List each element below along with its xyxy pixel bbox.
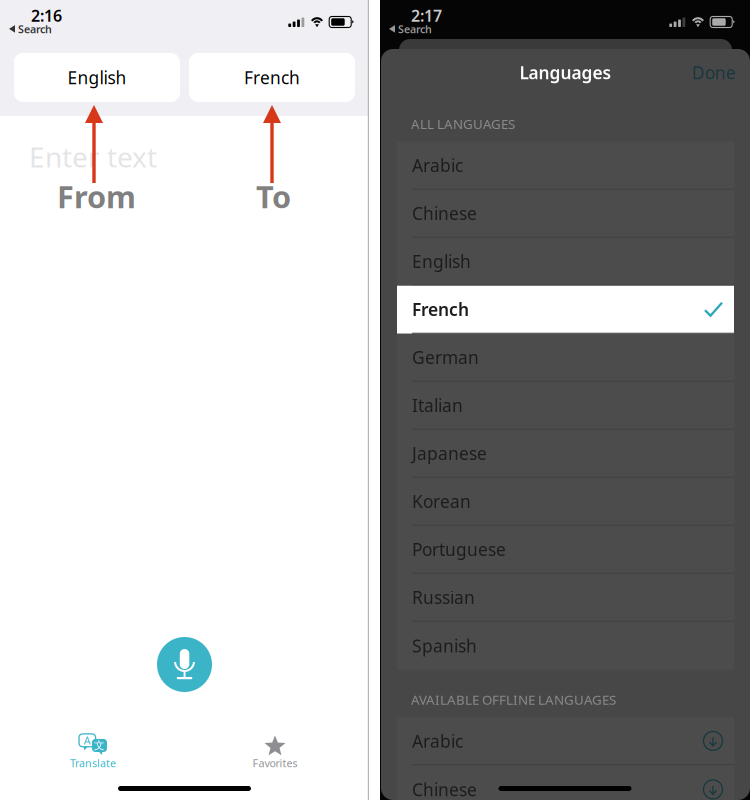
button[interactable]: Search bbox=[9, 22, 52, 36]
button[interactable]: Chinese bbox=[397, 765, 734, 800]
staticText: French bbox=[244, 66, 300, 89]
staticText: Chinese bbox=[412, 778, 477, 800]
button[interactable]: Japanese bbox=[397, 430, 734, 478]
button[interactable]: A bbox=[49, 734, 137, 770]
staticText: Enter text bbox=[29, 138, 157, 175]
button[interactable]: Search bbox=[389, 22, 432, 36]
staticText: Arabic bbox=[412, 729, 463, 752]
staticText: Spanish bbox=[412, 634, 477, 657]
button[interactable]: French bbox=[397, 286, 734, 334]
staticText: Japanese bbox=[412, 442, 487, 465]
staticText: Search bbox=[398, 22, 432, 36]
staticText: Favorites bbox=[252, 756, 297, 770]
staticText: Done bbox=[692, 61, 736, 84]
staticText: Italian bbox=[412, 394, 463, 417]
button[interactable]: Arabic bbox=[397, 717, 734, 765]
button[interactable]: Portuguese bbox=[397, 526, 734, 574]
staticText: AVAILABLE OFFLINE LANGUAGES bbox=[411, 691, 616, 708]
staticText: ALL LANGUAGES bbox=[411, 115, 515, 133]
button[interactable]: Chinese bbox=[397, 190, 734, 238]
staticText: Translate bbox=[70, 756, 116, 770]
staticText: 文 bbox=[94, 739, 105, 752]
staticText: Portuguese bbox=[412, 538, 506, 561]
staticText: Russian bbox=[412, 586, 475, 609]
staticText: Chinese bbox=[412, 202, 477, 225]
staticText: Search bbox=[18, 22, 52, 36]
staticText: To bbox=[256, 176, 291, 217]
button[interactable]: English bbox=[397, 238, 734, 286]
staticText: 2:17 bbox=[411, 5, 442, 26]
button[interactable]: German bbox=[397, 334, 734, 382]
staticText: A bbox=[84, 733, 91, 747]
button[interactable]: French bbox=[189, 53, 355, 102]
button[interactable]: Done bbox=[692, 53, 750, 92]
staticText: 2:16 bbox=[31, 5, 62, 26]
button[interactable]: Russian bbox=[397, 574, 734, 622]
button[interactable]: Arabic bbox=[397, 142, 734, 190]
button[interactable]: Italian bbox=[397, 382, 734, 430]
button[interactable]: Favorites bbox=[231, 734, 319, 770]
staticText: Korean bbox=[412, 490, 471, 513]
staticText: English bbox=[67, 66, 126, 89]
staticText: Arabic bbox=[412, 154, 463, 177]
button[interactable]: Spanish bbox=[397, 622, 734, 670]
staticText: Languages bbox=[519, 61, 611, 84]
staticText: English bbox=[412, 250, 471, 273]
button[interactable]: Record speech bbox=[157, 644, 212, 699]
button[interactable]: English bbox=[14, 53, 180, 102]
staticText: From bbox=[57, 176, 136, 217]
button[interactable]: Korean bbox=[397, 478, 734, 526]
staticText: French bbox=[412, 298, 469, 321]
staticText: German bbox=[412, 346, 479, 369]
